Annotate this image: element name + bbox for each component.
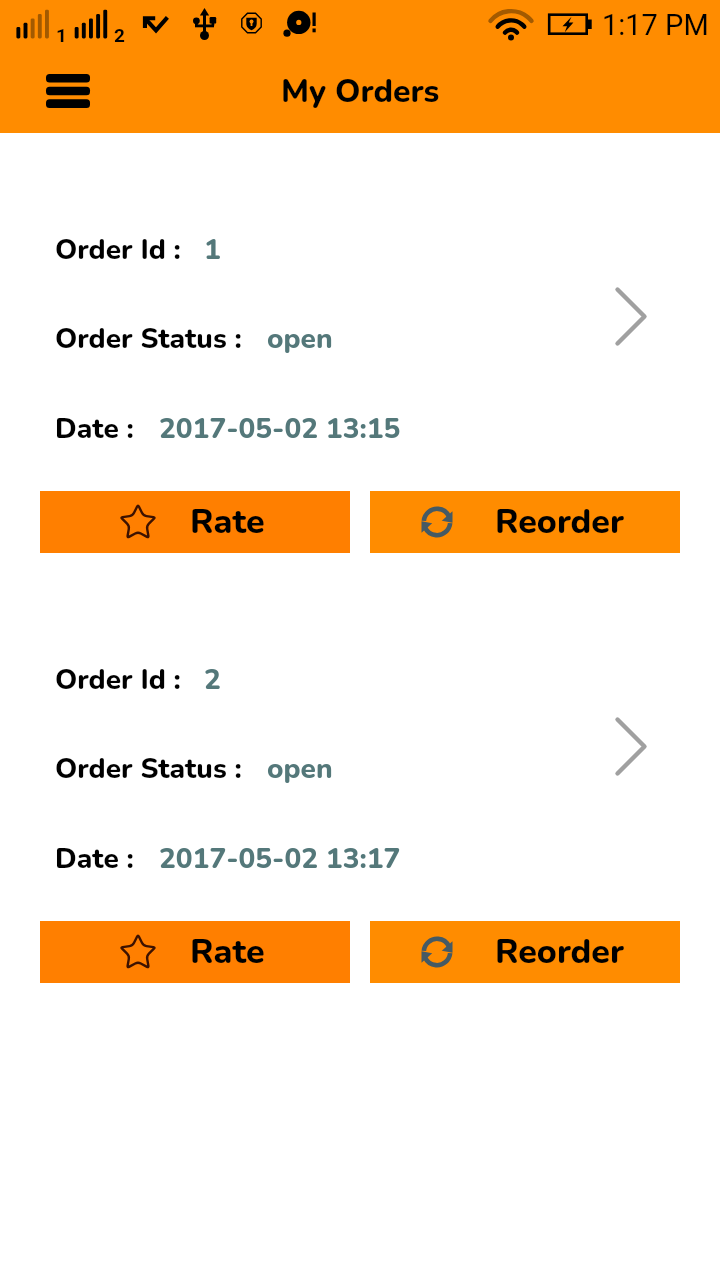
staticText: 2017-05-02 13:17 (159, 840, 401, 878)
staticText: Reorder (495, 499, 625, 545)
staticText: Order Id : (55, 231, 181, 269)
staticText: 1 (204, 231, 221, 269)
staticText: 1 (56, 24, 67, 46)
staticText: Order Status : (55, 320, 242, 358)
staticText: 2 (114, 24, 125, 46)
staticText: Date : (55, 410, 134, 448)
staticText: 1:17 PM (602, 8, 709, 42)
staticText: Rate (190, 929, 265, 975)
staticText: My Orders (281, 70, 440, 114)
staticText: Order Status : (55, 750, 242, 788)
button[interactable]: Order Id : (0, 213, 720, 455)
button[interactable]: Order Id : (0, 643, 720, 885)
button[interactable]: Open navigation menu (34, 62, 102, 120)
button[interactable]: Rate (40, 921, 350, 983)
staticText: Order Id : (55, 661, 181, 699)
staticText: Rate (190, 499, 265, 545)
staticText: open (267, 320, 333, 358)
button[interactable]: Reorder (370, 491, 680, 553)
staticText: 2 (204, 661, 221, 699)
staticText: Reorder (495, 929, 625, 975)
staticText: Date : (55, 840, 134, 878)
button[interactable]: Rate (40, 491, 350, 553)
button[interactable]: Reorder (370, 921, 680, 983)
staticText: 2017-05-02 13:15 (159, 410, 401, 448)
staticText: open (267, 750, 333, 788)
